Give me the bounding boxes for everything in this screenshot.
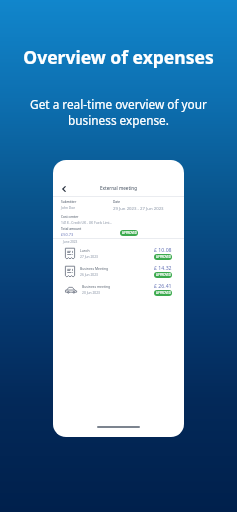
staticText: APPROVED [156, 255, 171, 259]
staticText: £ 10.08 [154, 246, 172, 253]
staticText: 27 Jun 2023 [80, 254, 99, 258]
staticText: Cost center [61, 215, 79, 219]
staticText: APPROVED [156, 291, 171, 295]
staticText: 26 Jun 2023 [80, 272, 99, 276]
staticText: £ 14.32 [154, 264, 172, 271]
staticText: £ 26.41 [154, 282, 172, 289]
staticText: APPROVED [122, 231, 137, 235]
staticText: John Doe [61, 205, 76, 209]
button[interactable]: Business Meeting [53, 262, 184, 280]
button[interactable]: Back [58, 183, 70, 195]
staticText: June 2023 [63, 240, 78, 244]
staticText: Business Meeting [80, 266, 109, 271]
button[interactable]: Business meeting [53, 280, 184, 298]
staticText: External meeting [53, 185, 184, 191]
staticText: Get a real-time overview of your busines… [0, 96, 237, 128]
staticText: Submitter [61, 200, 77, 204]
staticText: APPROVED [156, 273, 171, 277]
button[interactable]: Lunch [53, 244, 184, 262]
staticText: Lunch [80, 248, 90, 253]
staticText: Total amount [61, 227, 82, 231]
staticText: 1418 - Credit UK - UK Fuels Limi... [61, 220, 113, 224]
staticText: 29 Jun 2023 - 27 Jun 2023 [113, 205, 164, 211]
staticText: £50.73 [61, 232, 74, 237]
staticText: Business meeting [82, 284, 111, 289]
staticText: Date [113, 200, 121, 204]
staticText: Overview of expenses [0, 45, 237, 69]
staticText: 20 Jun 2023 [82, 290, 101, 294]
